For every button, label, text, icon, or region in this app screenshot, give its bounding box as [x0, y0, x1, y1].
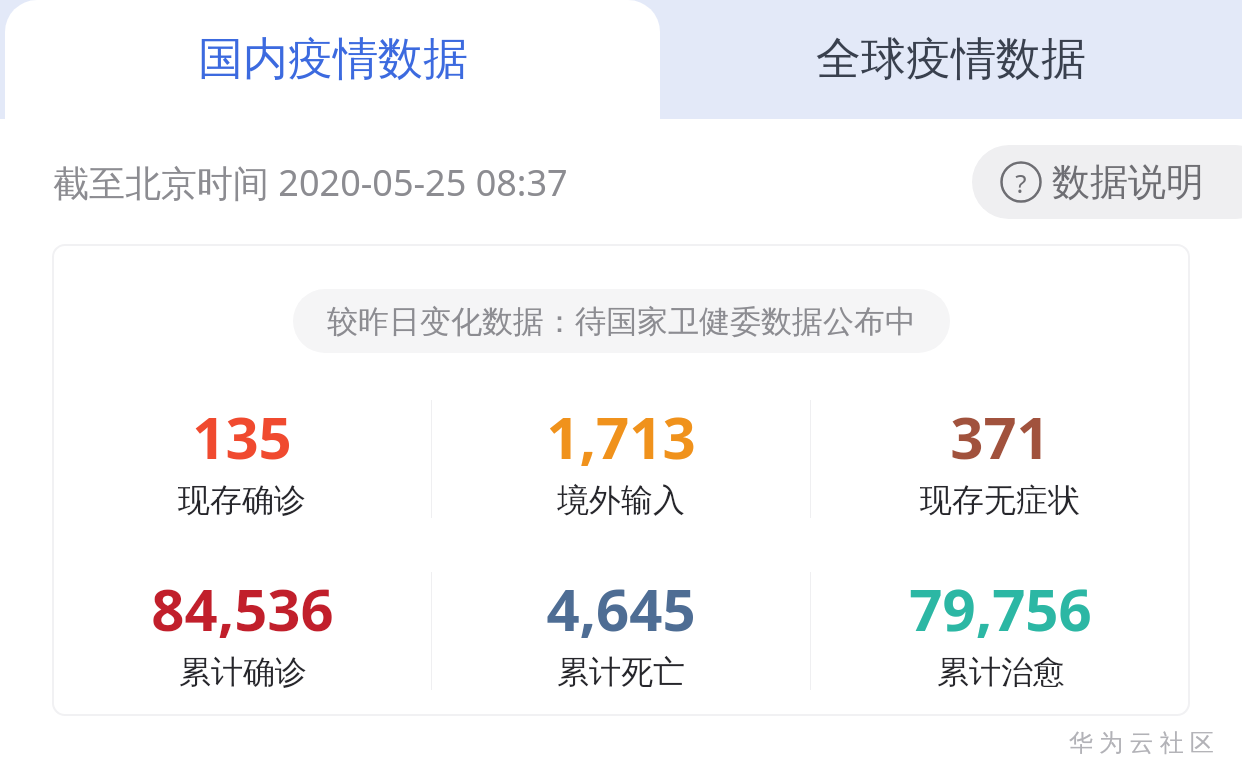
staticText: 较昨日变化数据：待国家卫健委数据公布中	[327, 302, 916, 341]
staticText: ?	[1015, 165, 1027, 200]
button[interactable]: 1,713	[546, 397, 696, 520]
staticText: 境外输入	[557, 480, 685, 520]
button[interactable]: 全球疫情数据	[660, 0, 1242, 119]
staticText: 数据说明	[1052, 158, 1204, 206]
staticText: 现存无症状	[920, 480, 1080, 520]
staticText: 累计死亡	[557, 652, 685, 692]
staticText: 371	[950, 397, 1050, 476]
staticText: 1,713	[546, 397, 696, 476]
staticText: 国内疫情数据	[198, 31, 468, 88]
button[interactable]: ?	[972, 145, 1242, 219]
staticText: 4,645	[546, 569, 696, 648]
button[interactable]: 4,645	[546, 569, 696, 692]
button[interactable]: 84,536	[151, 569, 334, 692]
staticText: 79,756	[909, 569, 1092, 648]
staticText: 累计治愈	[937, 652, 1065, 692]
staticText: 全球疫情数据	[816, 31, 1086, 88]
button[interactable]: 135	[178, 397, 306, 520]
staticText: 截至北京时间 2020-05-25 08:37	[53, 158, 568, 207]
staticText: 累计确诊	[179, 652, 307, 692]
staticText: 84,536	[151, 569, 334, 648]
button[interactable]: 国内疫情数据	[5, 0, 660, 119]
staticText: 135	[192, 397, 292, 476]
button[interactable]: 79,756	[909, 569, 1092, 692]
staticText: 现存确诊	[178, 480, 306, 520]
staticText: 华 为 云 社 区	[1069, 725, 1214, 758]
button[interactable]: 较昨日变化数据：待国家卫健委数据公布中	[293, 289, 950, 353]
button[interactable]: 371	[920, 397, 1080, 520]
